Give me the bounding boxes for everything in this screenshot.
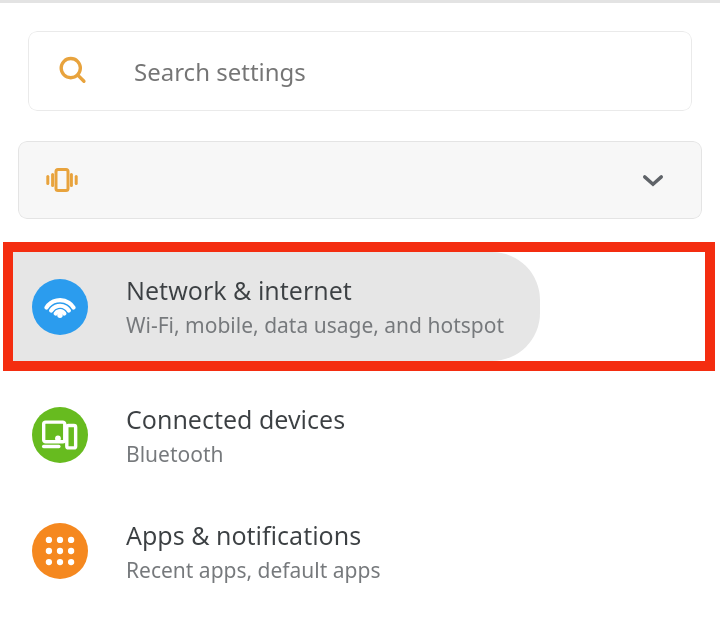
button[interactable]: Apps & notifications (0, 509, 720, 593)
staticText: Search settings (134, 55, 306, 88)
button[interactable]: Connected devices (0, 393, 720, 477)
staticText: Apps & notifications (126, 518, 362, 552)
button[interactable]: Network & internet (0, 252, 720, 361)
staticText: Wi-Fi, mobile, data usage, and hotspot (126, 311, 504, 340)
button[interactable]: Search settings (28, 31, 692, 111)
button[interactable]: Vibrate mode, expand (18, 141, 702, 219)
staticText: Bluetooth (126, 440, 224, 469)
staticText: Network & internet (126, 273, 352, 307)
staticText: Connected devices (126, 402, 346, 436)
staticText: Recent apps, default apps (126, 556, 381, 585)
